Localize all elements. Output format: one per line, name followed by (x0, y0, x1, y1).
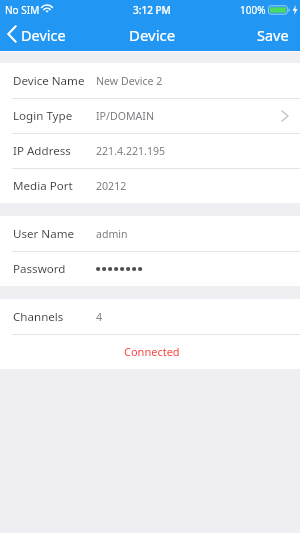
staticText: Device Name (13, 73, 85, 89)
other: Wi-Fi signal (41, 2, 53, 18)
staticText: New Device 2 (96, 74, 163, 88)
button[interactable]: Device Name (0, 63, 300, 98)
staticText: Device (129, 25, 176, 45)
staticText: 3:12 PM (133, 3, 171, 17)
staticText: 4 (96, 310, 103, 324)
button[interactable]: Device (0, 20, 74, 50)
staticText: Login Type (13, 108, 73, 124)
staticText: IP Address (13, 143, 71, 159)
button[interactable]: Connected (0, 334, 300, 369)
staticText: 20212 (96, 179, 127, 193)
staticText: Media Port (13, 178, 73, 194)
button[interactable]: Password (0, 251, 300, 286)
button[interactable]: Media Port (0, 168, 300, 203)
staticText: Save (257, 25, 289, 45)
staticText: Connected (124, 344, 180, 359)
staticText: 100% (240, 3, 266, 17)
button[interactable]: Login Type (0, 98, 300, 133)
staticText: 221.4.221.195 (96, 144, 166, 158)
staticText: Password (13, 261, 66, 277)
button[interactable]: Save (245, 20, 300, 50)
staticText: IP/DOMAIN (96, 109, 154, 123)
staticText: User Name (13, 226, 75, 242)
staticText: admin (96, 227, 128, 241)
button[interactable]: Channels (0, 299, 300, 334)
other: Battery 100 percent, charging (268, 5, 290, 15)
button[interactable]: IP Address (0, 133, 300, 168)
staticText: Channels (13, 309, 64, 325)
staticText: Device (21, 25, 66, 45)
staticText: No SIM (5, 3, 40, 17)
button[interactable]: User Name (0, 216, 300, 251)
